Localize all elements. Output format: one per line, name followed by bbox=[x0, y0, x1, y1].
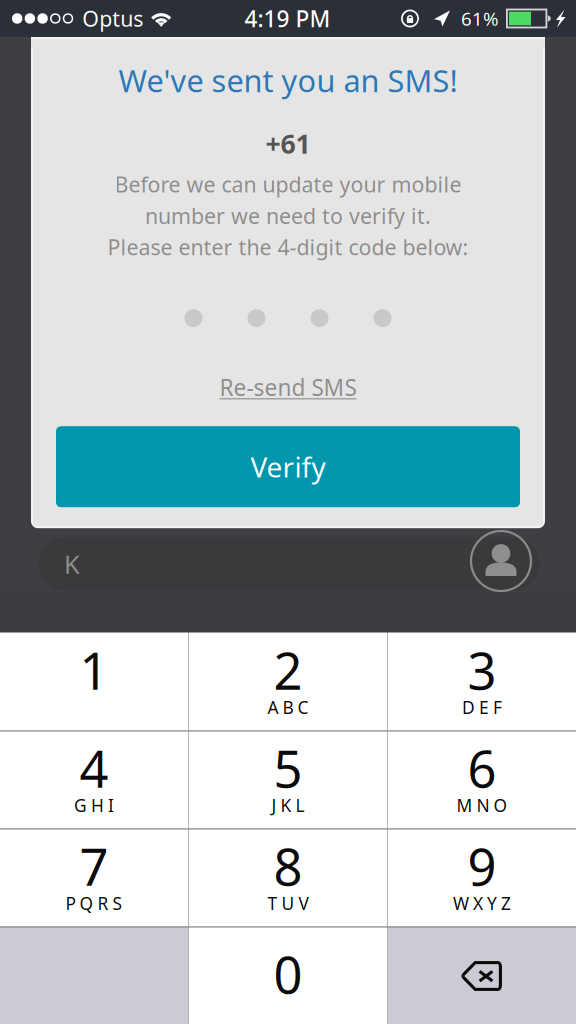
staticText: WXYZ bbox=[453, 892, 511, 915]
button[interactable]: 9 bbox=[388, 829, 576, 926]
button[interactable]: Verify bbox=[56, 426, 520, 507]
button[interactable]: 2 bbox=[189, 632, 387, 730]
staticText: MNO bbox=[456, 794, 507, 817]
staticText: 4:19 PM bbox=[245, 3, 331, 33]
staticText: ABC bbox=[267, 696, 308, 719]
staticText: Verify bbox=[250, 448, 325, 485]
staticText: 61% bbox=[461, 6, 499, 31]
staticText: We've sent you an SMS! bbox=[118, 60, 457, 101]
staticText: 8 bbox=[273, 832, 302, 900]
staticText: number we need to verify it. bbox=[145, 201, 431, 230]
staticText: 9 bbox=[467, 832, 496, 900]
staticText: 2 bbox=[273, 636, 302, 704]
staticText: K bbox=[64, 547, 80, 581]
button[interactable]: 5 bbox=[189, 731, 387, 828]
staticText: GHI bbox=[74, 794, 114, 817]
staticText: 5 bbox=[273, 734, 302, 802]
staticText: Please enter the 4-digit code below: bbox=[107, 233, 468, 261]
staticText: 0 bbox=[273, 940, 302, 1008]
staticText: 3 bbox=[467, 636, 496, 704]
staticText: JKL bbox=[271, 794, 304, 817]
button[interactable]: 1 bbox=[0, 632, 188, 730]
staticText: +61 bbox=[265, 126, 310, 161]
button[interactable]: 0 bbox=[189, 927, 387, 1024]
button[interactable]: Delete bbox=[388, 927, 576, 1024]
staticText: TUV bbox=[267, 892, 308, 915]
button[interactable]: Re-send SMS bbox=[205, 366, 370, 408]
button[interactable]: 8 bbox=[189, 829, 387, 926]
staticText: 4 bbox=[79, 734, 108, 802]
staticText: Re-send SMS bbox=[219, 372, 356, 402]
staticText: DEF bbox=[462, 696, 502, 719]
staticText: 1 bbox=[79, 636, 108, 704]
button[interactable]: 6 bbox=[388, 731, 576, 828]
button[interactable]: 3 bbox=[388, 632, 576, 730]
staticText: Optus bbox=[82, 4, 143, 33]
staticText: 7 bbox=[79, 832, 108, 900]
button[interactable]: 4 bbox=[0, 731, 188, 828]
button[interactable]: 7 bbox=[0, 829, 188, 926]
staticText: PQRS bbox=[65, 892, 122, 915]
staticText: Before we can update your mobile bbox=[114, 170, 461, 198]
staticText: 6 bbox=[467, 734, 496, 802]
